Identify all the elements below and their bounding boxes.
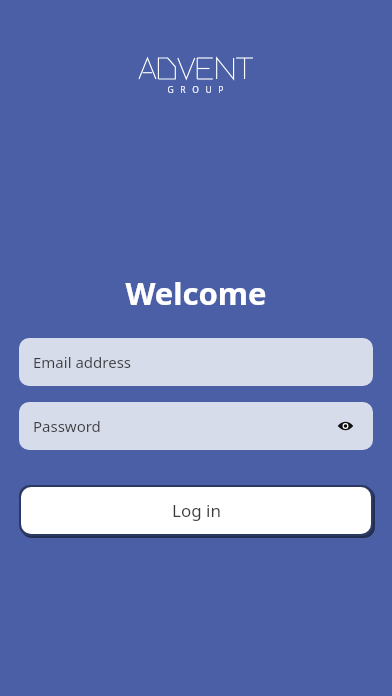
staticText: Email address	[33, 352, 132, 372]
staticText: Log in	[172, 499, 221, 522]
staticText: Welcome	[19, 272, 373, 314]
staticText: G R O U P	[167, 84, 226, 96]
button[interactable]: Email address	[19, 338, 373, 386]
staticText: Password	[33, 416, 101, 436]
button[interactable]: Log in	[21, 487, 371, 534]
button[interactable]: Show password	[331, 412, 359, 440]
button[interactable]: Password	[19, 402, 373, 450]
